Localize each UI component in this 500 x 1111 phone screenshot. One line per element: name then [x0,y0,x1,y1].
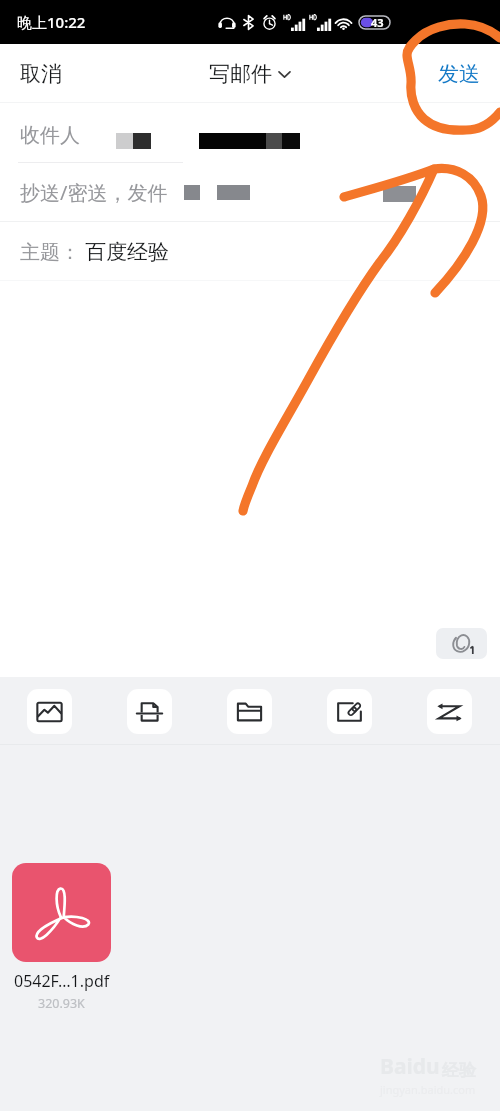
staticText: 320.93K [38,995,85,1012]
staticText: 经验 [442,1060,476,1081]
staticText: 晚上10:22 [17,12,86,32]
button[interactable]: Insert link [327,689,372,734]
staticText: 写邮件 [209,61,272,87]
button[interactable]: Attachments, 1 [436,628,487,659]
button[interactable]: PDF attachment [12,863,111,962]
button[interactable]: Transfer [427,689,472,734]
staticText: Baidu [380,1052,440,1081]
staticText: 取消 [20,61,62,87]
button[interactable]: 取消 [0,47,84,101]
staticText: 百度经验 [85,239,169,265]
button[interactable]: 收件人 [0,103,500,163]
button[interactable]: Files [227,689,272,734]
staticText: 发送 [438,61,480,87]
button[interactable]: 抄送/密送，发件 [0,163,500,222]
staticText: 收件人 [20,123,80,148]
staticText: 0542F…1.pdf [14,970,110,992]
button[interactable]: 主题： [0,222,500,281]
staticText: 43 [371,15,384,30]
staticText: 抄送/密送，发件 [20,179,168,206]
button[interactable]: 发送 [416,47,500,101]
button[interactable]: Insert image [27,689,72,734]
staticText: 主题： [20,240,80,265]
button[interactable]: Scan document [127,689,172,734]
button[interactable]: 写邮件 [204,56,295,92]
